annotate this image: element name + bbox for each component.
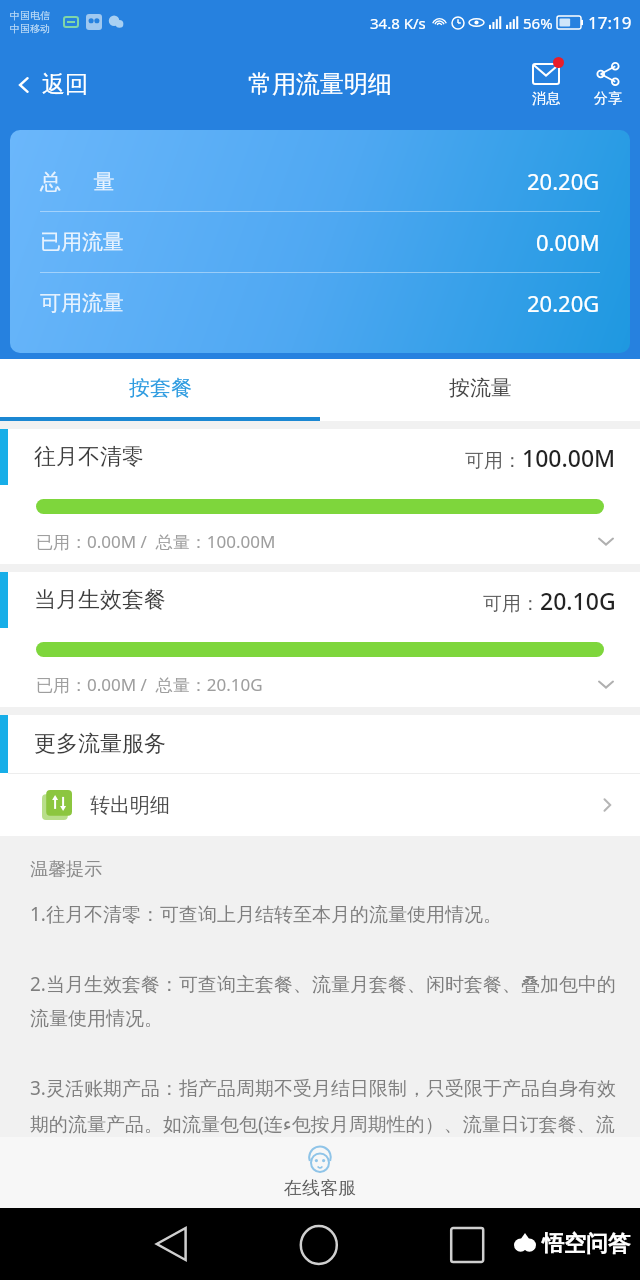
staticText: 可用： — [483, 592, 540, 616]
staticText: 可用流量 — [40, 290, 124, 316]
staticText: 20.10G — [540, 585, 616, 616]
button[interactable]: 转出明细 — [0, 774, 640, 836]
staticText: 2.当月生效套餐：可查询主套餐、流量月套餐、闲时套餐、叠加包中的流量使用情况。 — [30, 971, 616, 1031]
staticText: 温馨提示 — [30, 858, 102, 881]
staticText: 1.往月不清零：可查询上月结转至本月的流量使用情况。 — [30, 901, 502, 927]
button[interactable]: 分享 — [588, 57, 628, 112]
staticText: 已用：0.00M / 总量：100.00M — [36, 530, 276, 553]
staticText: 转出明细 — [90, 793, 170, 818]
staticText: 按流量 — [449, 375, 512, 401]
staticText: 更多流量服务 — [34, 730, 166, 758]
staticText: 悟空问答 — [542, 1230, 630, 1258]
staticText: 往月不清零 — [34, 443, 144, 471]
staticText: 100.00M — [522, 442, 616, 473]
staticText: 返回 — [42, 70, 88, 99]
button[interactable]: 当月生效套餐 — [0, 572, 640, 707]
staticText: 消息 — [532, 90, 560, 108]
staticText: 按套餐 — [129, 375, 192, 401]
staticText: 20.20G — [527, 288, 600, 318]
button[interactable]: 按套餐 — [0, 359, 320, 417]
button[interactable]: 往月不清零 — [0, 429, 640, 564]
staticText: 总 量 — [40, 167, 115, 196]
staticText: 0.00M — [536, 227, 600, 257]
staticText: 常用流量明细 — [248, 69, 392, 99]
staticText: 在线客服 — [284, 1177, 356, 1200]
button[interactable]: 消息 — [526, 57, 566, 112]
staticText: 3.灵活账期产品：指产品周期不受月结日限制，只受限于产品自身有效期的流量产品。如… — [30, 1075, 616, 1137]
button[interactable]: 返回 — [0, 62, 102, 107]
staticText: 中国电信 — [10, 9, 50, 22]
staticText: 可用： — [465, 449, 522, 473]
staticText: 当月生效套餐 — [34, 586, 166, 614]
staticText: 56% — [523, 13, 553, 33]
staticText: 已用：0.00M / 总量：20.10G — [36, 673, 263, 696]
staticText: 17:19 — [588, 11, 632, 34]
staticText: 34.8 K/s — [370, 13, 426, 33]
staticText: 已用流量 — [40, 229, 124, 255]
button[interactable]: 在线客服 — [0, 1137, 640, 1208]
staticText: 分享 — [594, 90, 622, 108]
staticText: 中国移动 — [10, 22, 50, 35]
staticText: 20.20G — [527, 166, 600, 196]
button[interactable]: 按流量 — [320, 359, 640, 417]
